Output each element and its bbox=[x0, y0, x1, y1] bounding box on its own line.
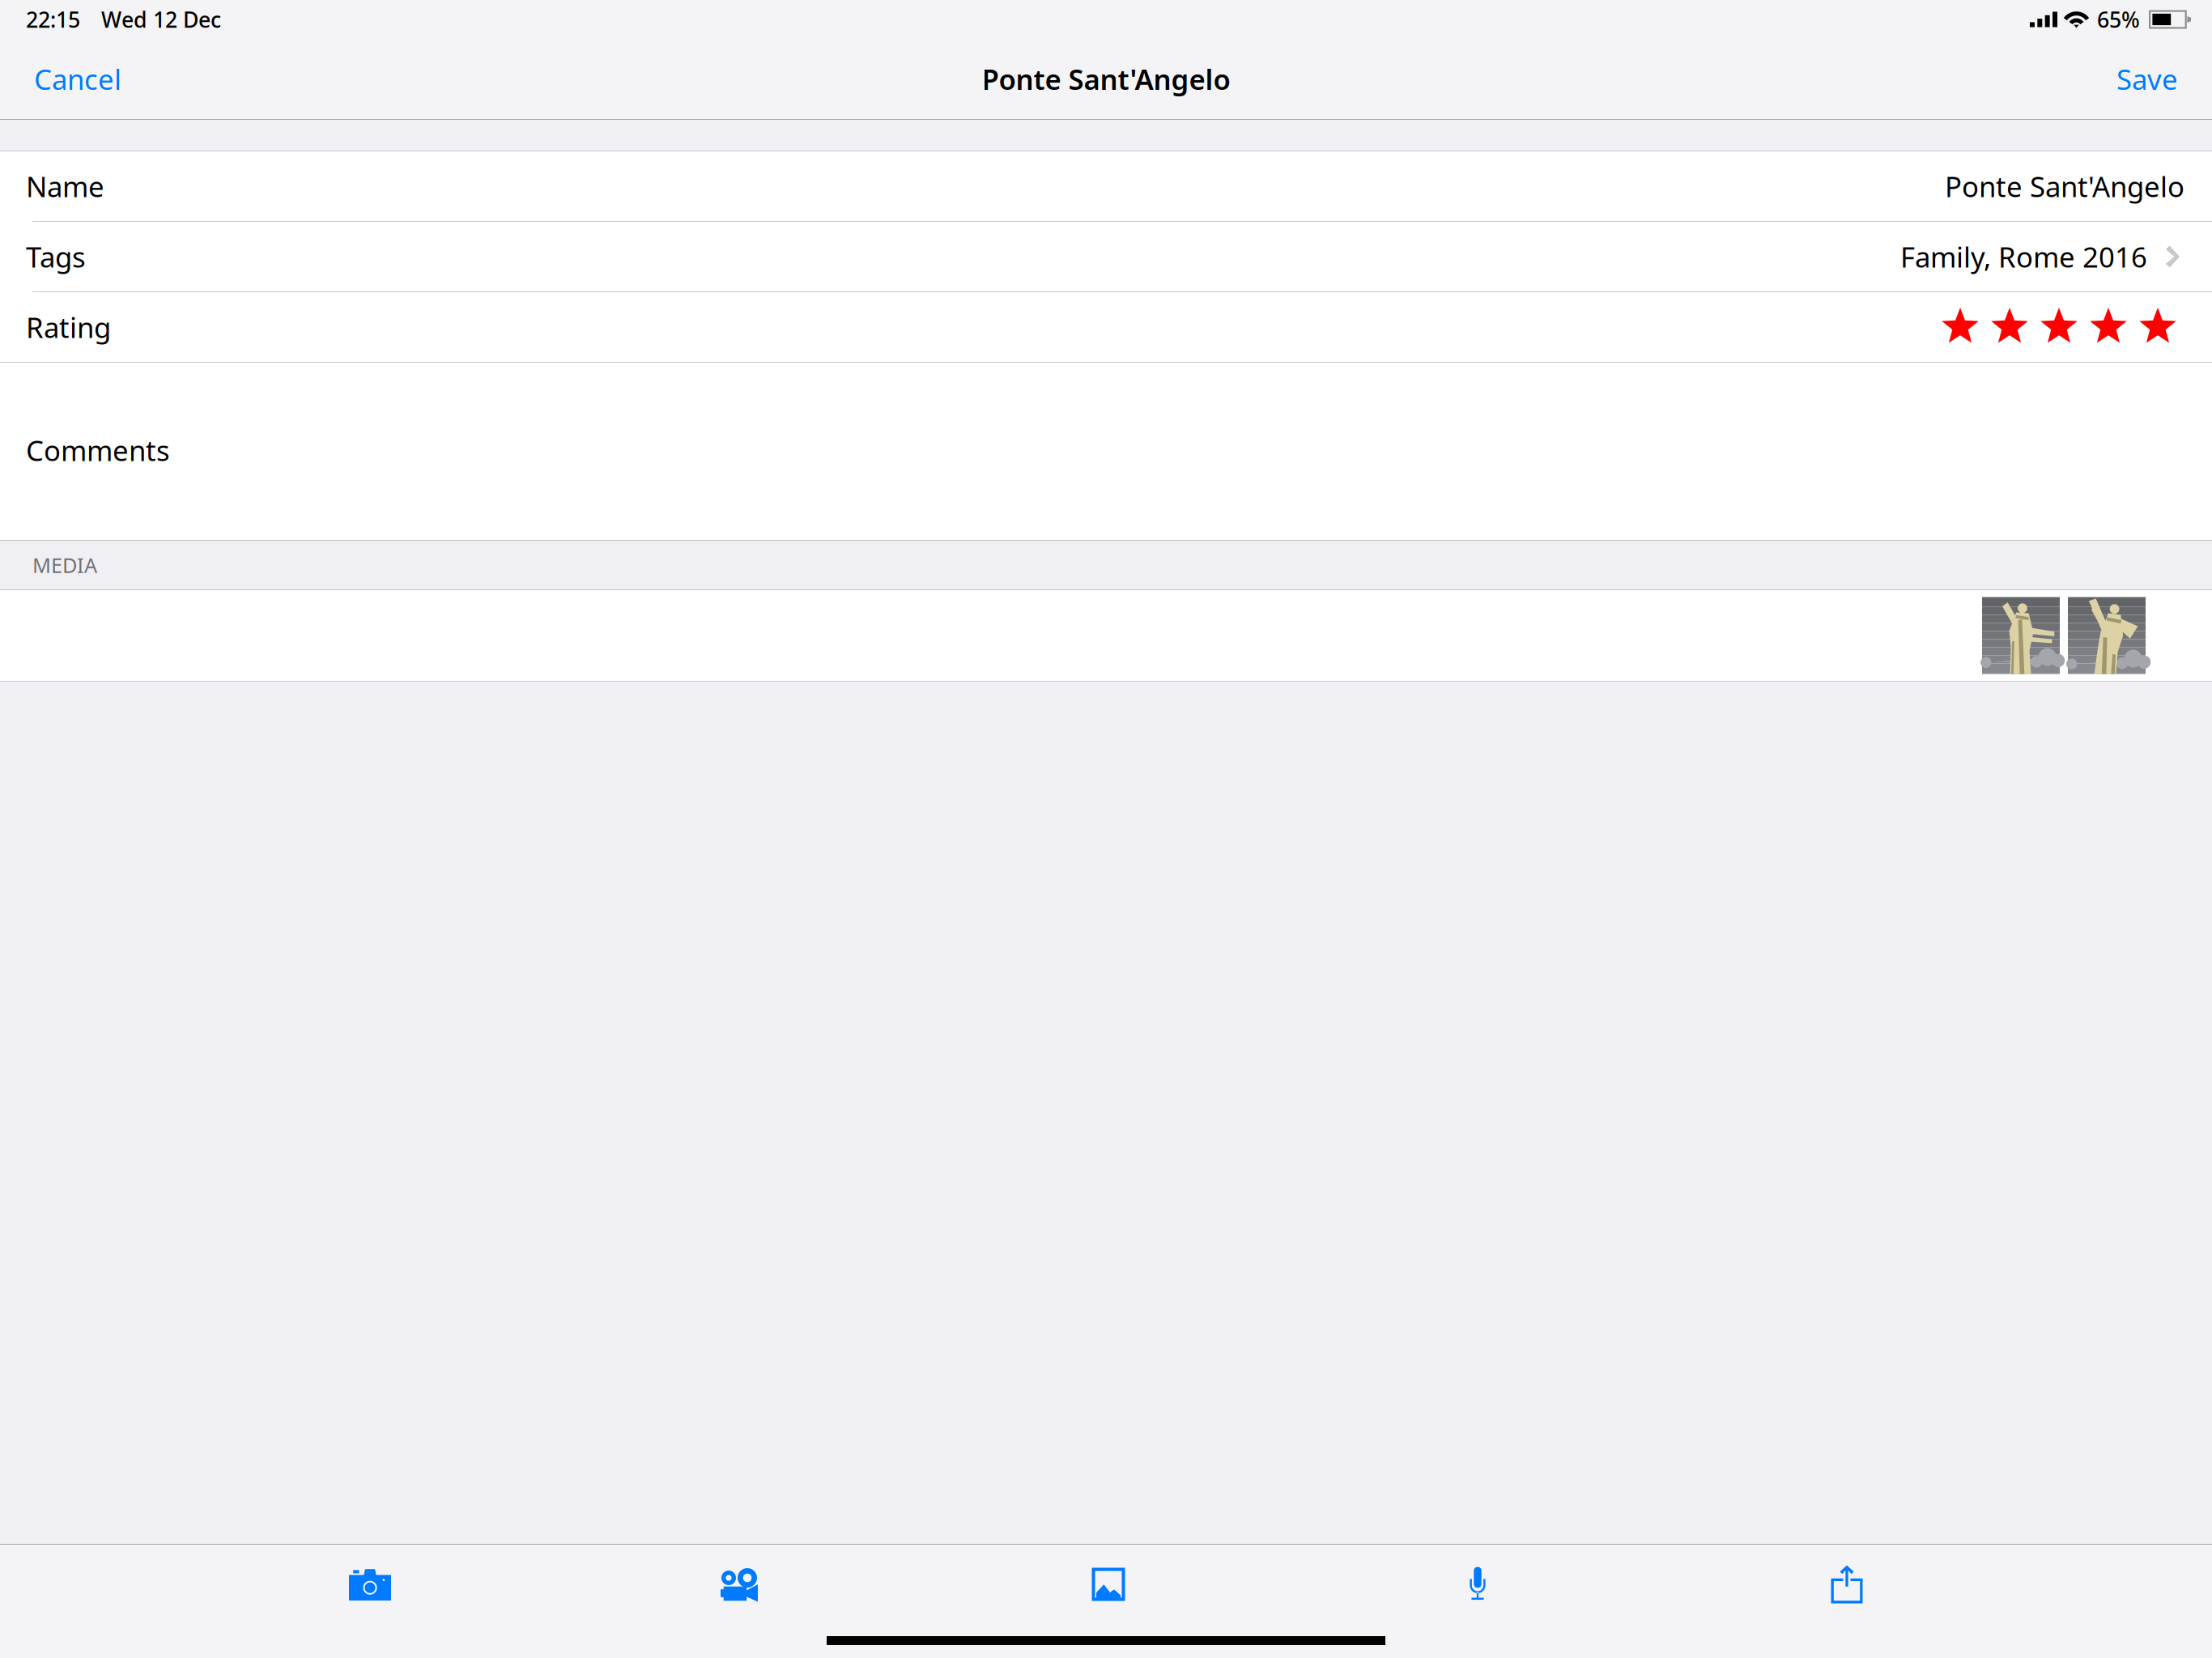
button[interactable]: Cancel bbox=[26, 49, 130, 109]
button[interactable]: Photo 1 bbox=[1982, 597, 2060, 674]
staticText: Family, Rome 2016 bbox=[1900, 238, 2147, 275]
staticText: Wed 12 Dec bbox=[101, 5, 221, 34]
staticText: Cancel bbox=[34, 60, 121, 98]
button[interactable]: Rate 5 stars bbox=[2138, 307, 2177, 347]
staticText: Name bbox=[26, 168, 104, 205]
button[interactable]: Choose Photo bbox=[1087, 1565, 1129, 1604]
staticText: MEDIA bbox=[32, 551, 97, 579]
staticText: Rating bbox=[26, 308, 111, 346]
button[interactable]: Record Video bbox=[718, 1565, 760, 1604]
button[interactable]: Rate 4 stars bbox=[2089, 307, 2128, 347]
staticText: Ponte Sant'Angelo bbox=[982, 60, 1230, 98]
staticText: 22:15 bbox=[26, 5, 80, 34]
button[interactable]: Share bbox=[1826, 1565, 1868, 1604]
button[interactable]: Record Audio bbox=[1457, 1565, 1499, 1604]
button[interactable]: Rate 2 stars bbox=[1990, 307, 2029, 347]
button[interactable]: Take Photo bbox=[349, 1565, 391, 1604]
button[interactable]: Save bbox=[2108, 49, 2186, 109]
staticText: Comments bbox=[26, 432, 170, 469]
staticText: 65% bbox=[2097, 5, 2140, 34]
button[interactable]: Tags bbox=[0, 222, 2212, 291]
staticText: Ponte Sant'Angelo bbox=[1945, 168, 2184, 205]
button[interactable]: Rate 3 stars bbox=[2040, 307, 2078, 347]
button[interactable]: Rate 1 star bbox=[1941, 307, 1980, 347]
staticText: Save bbox=[2116, 60, 2178, 98]
button[interactable]: Photo 2 bbox=[2068, 597, 2146, 674]
staticText: Tags bbox=[26, 238, 86, 275]
